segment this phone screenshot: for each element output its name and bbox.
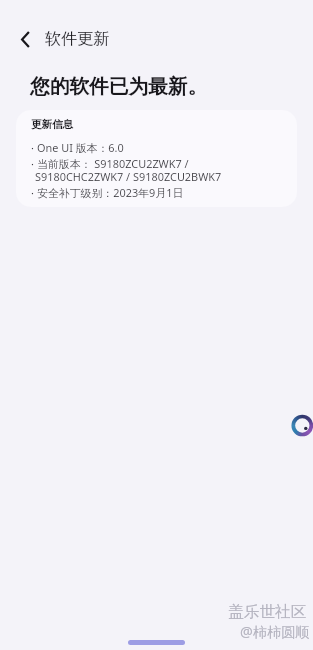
staticText: · — [31, 140, 34, 155]
button[interactable]: 软件更新 — [43, 23, 107, 55]
staticText: 盖乐世社区 — [228, 602, 307, 622]
button[interactable]: Loading indicator — [291, 414, 313, 437]
staticText: · — [31, 156, 34, 171]
staticText: 当前版本： S9180ZCU2ZWK7 / — [37, 156, 189, 171]
staticText: 软件更新 — [45, 29, 109, 49]
staticText: 您的软件已为最新。 — [30, 74, 208, 99]
staticText: 更新信息 — [31, 118, 73, 131]
staticText: S9180CHC2ZWK7 / S9180ZCU2BWK7 — [35, 169, 222, 184]
staticText: 安全补丁级别：2023年9月1日 — [37, 185, 184, 200]
button[interactable]: Back — [7, 21, 43, 57]
button[interactable]: 更新信息 — [16, 110, 297, 207]
staticText: · — [31, 185, 34, 200]
staticText: One UI 版本：6.0 — [37, 140, 124, 155]
staticText: @柿柿圆顺 — [240, 622, 310, 641]
